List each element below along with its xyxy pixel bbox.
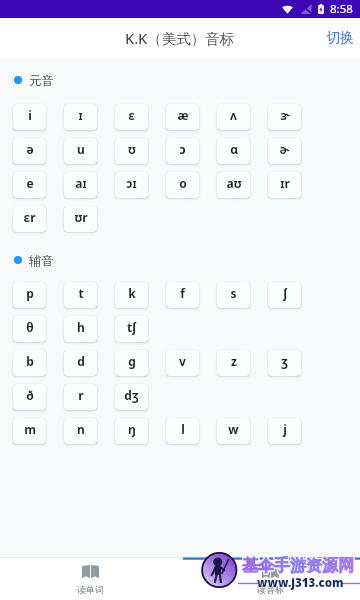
button[interactable]: i	[13, 104, 46, 130]
staticText: 基伞手游资源网	[243, 555, 355, 575]
staticText: ɪr	[280, 175, 290, 191]
staticText: i	[28, 107, 32, 123]
button[interactable]: θ	[13, 316, 46, 342]
button[interactable]: n	[64, 418, 97, 444]
button[interactable]: ɔ	[166, 138, 199, 164]
button[interactable]: ʒ	[268, 350, 301, 376]
button[interactable]: aʊ	[217, 172, 250, 198]
staticText: z	[231, 353, 237, 369]
button[interactable]: ɛ	[115, 104, 148, 130]
staticText: 基伞手游资源网	[242, 555, 354, 575]
button[interactable]: ɚ	[268, 138, 301, 164]
button[interactable]: 读音标	[180, 558, 360, 600]
staticText: b	[26, 353, 34, 369]
button[interactable]: v	[166, 350, 199, 376]
button[interactable]: t	[64, 282, 97, 308]
staticText: 读单词	[77, 584, 104, 595]
button[interactable]: 切换	[314, 18, 360, 58]
button[interactable]: ɝ	[268, 104, 301, 130]
button[interactable]: ə	[13, 138, 46, 164]
staticText: 读音标	[257, 584, 284, 595]
button[interactable]: m	[13, 418, 46, 444]
staticText: 基伞手游资源网	[243, 557, 355, 577]
staticText: f	[180, 285, 185, 301]
button[interactable]: p	[13, 282, 46, 308]
staticText: 基伞手游资源网	[241, 555, 353, 575]
button[interactable]: j	[268, 418, 301, 444]
staticText: ɝ	[280, 107, 290, 123]
staticText: l	[181, 421, 185, 437]
staticText: ɑ	[230, 141, 238, 157]
staticText: s	[230, 285, 237, 301]
staticText: ʊr	[74, 209, 88, 225]
button[interactable]: aɪ	[64, 172, 97, 198]
button[interactable]: ŋ	[115, 418, 148, 444]
staticText: ʒ	[281, 353, 288, 369]
staticText: 基伞手游资源网	[242, 557, 354, 577]
staticText: k	[128, 285, 136, 301]
staticText: ɛ	[128, 107, 135, 123]
button[interactable]: ɑ	[217, 138, 250, 164]
button[interactable]: s	[217, 282, 250, 308]
staticText: ɛr	[23, 209, 36, 225]
staticText: ə	[26, 141, 34, 157]
button[interactable]: k	[115, 282, 148, 308]
staticText: ŋ	[128, 421, 136, 437]
staticText: ɪ	[78, 107, 83, 123]
staticText: 辅音	[29, 253, 54, 267]
button[interactable]: u	[64, 138, 97, 164]
staticText: 基伞手游资源网	[242, 556, 354, 576]
button[interactable]: e	[13, 172, 46, 198]
button[interactable]: ɛr	[13, 206, 46, 232]
staticText: d	[77, 353, 85, 369]
staticText: j	[283, 421, 287, 437]
staticText: 8:58	[330, 1, 353, 17]
button[interactable]: ʊr	[64, 206, 97, 232]
staticText: tʃ	[127, 319, 136, 335]
button[interactable]: ɔɪ	[115, 172, 148, 198]
staticText: ɔ	[179, 141, 186, 157]
staticText: n	[77, 421, 85, 437]
button[interactable]: ð	[13, 384, 46, 410]
staticText: o	[179, 175, 187, 191]
staticText: aɪ	[75, 175, 87, 191]
button[interactable]: dʒ	[115, 384, 148, 410]
staticText: 基伞手游资源网	[241, 557, 353, 577]
button[interactable]: h	[64, 316, 97, 342]
button[interactable]: 读单词	[0, 558, 180, 600]
staticText: 基伞手游资源网	[243, 556, 355, 576]
button[interactable]: tʃ	[115, 316, 148, 342]
button[interactable]: ʊ	[115, 138, 148, 164]
staticText: ʃ	[283, 285, 287, 301]
staticText: r	[78, 387, 84, 403]
staticText: ɔɪ	[126, 175, 137, 191]
button[interactable]: l	[166, 418, 199, 444]
button[interactable]: ʃ	[268, 282, 301, 308]
staticText: aʊ	[226, 175, 242, 191]
staticText: æ	[177, 107, 189, 123]
button[interactable]: ɪ	[64, 104, 97, 130]
staticText: m	[24, 421, 36, 437]
staticText: ʌ	[230, 107, 237, 123]
button[interactable]: æ	[166, 104, 199, 130]
button[interactable]: z	[217, 350, 250, 376]
staticText: K.K（美式）音标	[125, 28, 235, 48]
button[interactable]: f	[166, 282, 199, 308]
staticText: θ	[26, 319, 34, 335]
button[interactable]: r	[64, 384, 97, 410]
button[interactable]: ʌ	[217, 104, 250, 130]
staticText: ð	[26, 387, 34, 403]
staticText: v	[179, 353, 186, 369]
staticText: dʒ	[124, 387, 139, 403]
button[interactable]: o	[166, 172, 199, 198]
button[interactable]: d	[64, 350, 97, 376]
button[interactable]: g	[115, 350, 148, 376]
staticText: g	[128, 353, 136, 369]
button[interactable]: ɪr	[268, 172, 301, 198]
staticText: 基伞手游资源网	[241, 556, 353, 576]
button[interactable]: b	[13, 350, 46, 376]
staticText: ʊ	[128, 141, 136, 157]
staticText: 切换	[326, 29, 354, 47]
staticText: 元音	[29, 73, 54, 87]
button[interactable]: w	[217, 418, 250, 444]
